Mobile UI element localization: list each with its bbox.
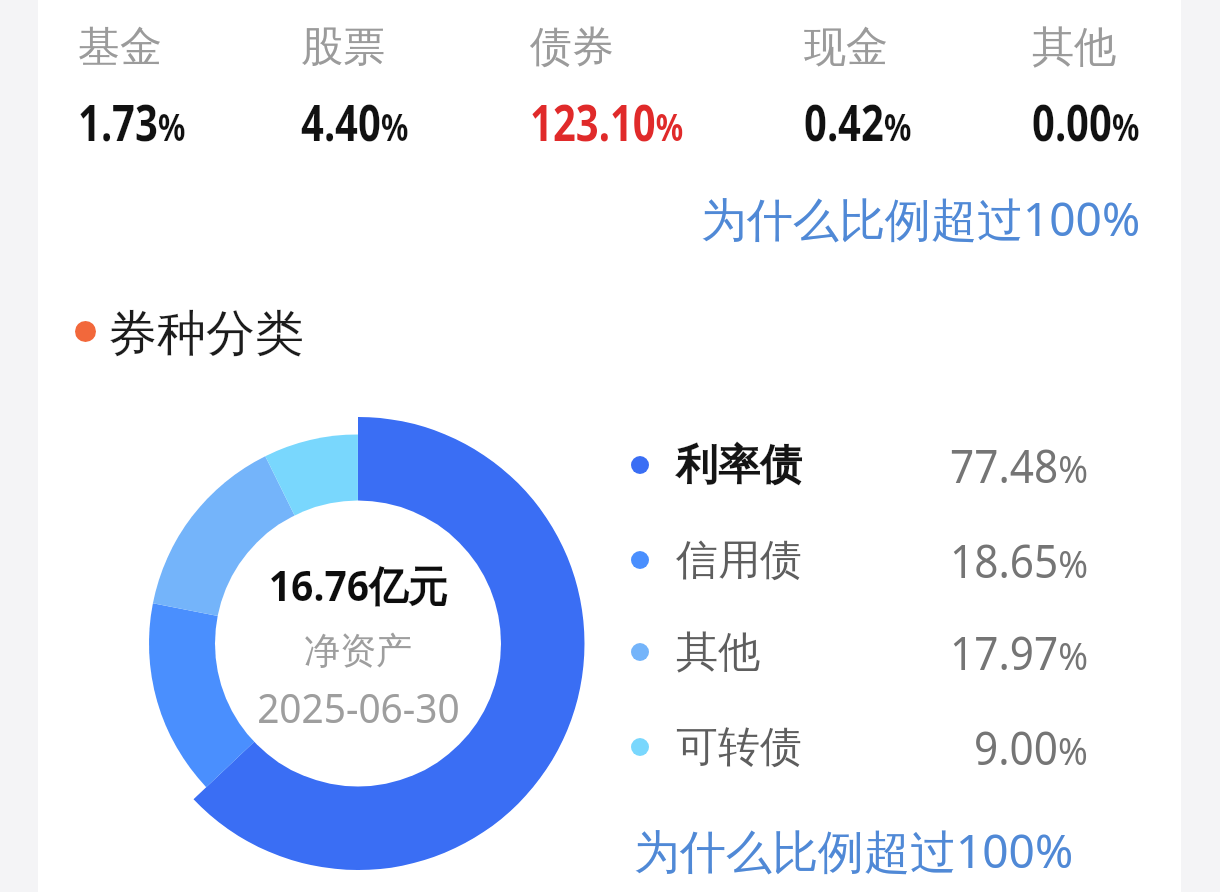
staticText: 券种分类 (108, 303, 304, 365)
staticText: 债券 (530, 21, 614, 74)
staticText: 为什么比例超过100% (701, 187, 1141, 250)
staticText: 其他 (1032, 21, 1116, 74)
staticText: 0.42% (804, 88, 912, 156)
staticText: 77.48% (950, 434, 1088, 497)
staticText: 利率债 (676, 439, 802, 492)
staticText: 净资产 (304, 628, 412, 673)
staticText: 为什么比例超过100% (634, 819, 1074, 882)
staticText: 17.97% (950, 621, 1088, 684)
staticText: 9.00% (974, 716, 1088, 779)
staticText: 18.65% (950, 529, 1088, 592)
staticText: 基金 (78, 21, 162, 74)
staticText: 其他 (676, 626, 760, 679)
staticText: 4.40% (301, 88, 409, 156)
staticText: 123.10% (530, 88, 684, 156)
staticText: 现金 (804, 21, 888, 74)
button[interactable]: 为什么比例超过100% (701, 187, 1141, 250)
staticText: 可转债 (676, 721, 802, 774)
staticText: 16.76亿元 (269, 556, 447, 613)
staticText: 股票 (301, 21, 385, 74)
staticText: 信用债 (676, 534, 802, 587)
staticText: 0.00% (1032, 88, 1140, 156)
button[interactable]: 为什么比例超过100% (634, 819, 1074, 882)
staticText: 2025-06-30 (257, 680, 460, 734)
staticText: 1.73% (78, 88, 186, 156)
